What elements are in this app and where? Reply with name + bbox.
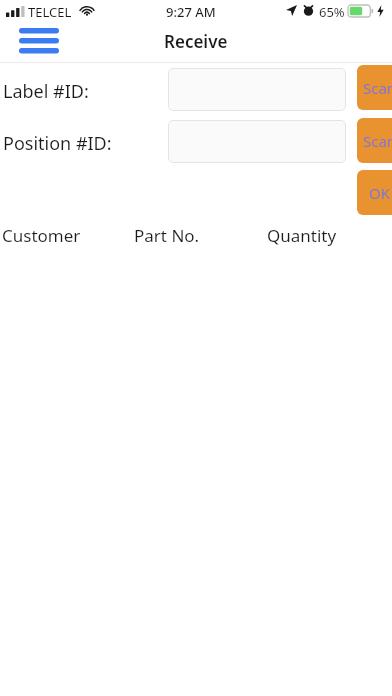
- staticText: Scan: [363, 78, 392, 98]
- staticText: Label #ID:: [3, 79, 89, 104]
- button[interactable]: Scan: [357, 65, 392, 110]
- staticText: Scan: [363, 131, 392, 151]
- button[interactable]: [168, 120, 346, 163]
- staticText: TELCEL: [28, 3, 72, 21]
- staticText: Customer: [2, 224, 81, 247]
- staticText: 65%: [319, 3, 345, 21]
- button[interactable]: [168, 68, 346, 111]
- button[interactable]: Scan: [357, 118, 392, 163]
- staticText: OK: [369, 183, 391, 203]
- button[interactable]: OK: [357, 170, 392, 215]
- staticText: Part No.: [134, 224, 200, 247]
- staticText: Position #ID:: [3, 131, 112, 156]
- staticText: Receive: [164, 30, 228, 53]
- staticText: 9:27 AM: [166, 3, 216, 21]
- button[interactable]: Menu: [10, 22, 68, 62]
- staticText: Quantity: [267, 224, 337, 247]
